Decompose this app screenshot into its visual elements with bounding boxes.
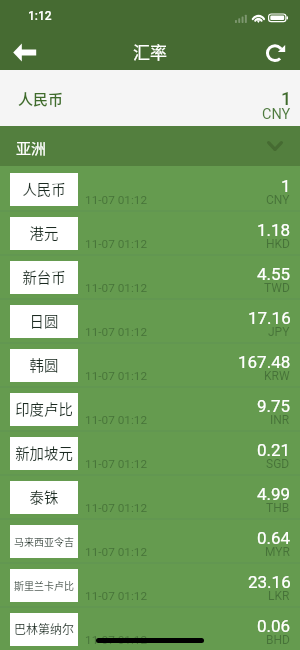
staticText: 11-07 01:12 <box>85 633 148 647</box>
button[interactable]: 斯里兰卡卢比 <box>0 569 300 613</box>
button[interactable]: Refresh <box>254 28 300 70</box>
staticText: 11-07 01:12 <box>85 589 148 603</box>
staticText: 4.55 <box>257 264 291 284</box>
staticText: HKD <box>266 237 290 251</box>
staticText: 11-07 01:12 <box>85 413 148 427</box>
staticText: 1 <box>281 176 291 196</box>
staticText: INR <box>270 413 290 427</box>
staticText: JPY <box>268 325 290 339</box>
staticText: CNY <box>262 106 291 123</box>
staticText: 港元 <box>10 222 78 243</box>
staticText: 167.48 <box>238 352 291 372</box>
staticText: CNY <box>266 193 290 207</box>
staticText: 4.99 <box>257 484 291 504</box>
button[interactable]: 巴林第纳尔 <box>0 613 300 650</box>
staticText: 巴林第纳尔 <box>10 620 78 637</box>
button[interactable]: 人民币 <box>0 173 300 217</box>
staticText: 11-07 01:12 <box>85 369 148 383</box>
staticText: 新加坡元 <box>10 442 78 463</box>
staticText: 斯里兰卡卢比 <box>10 578 78 592</box>
staticText: 1 <box>281 88 292 109</box>
staticText: 11-07 01:12 <box>85 545 148 559</box>
staticText: 人民币 <box>10 178 78 199</box>
button[interactable]: 亚洲 <box>0 126 300 166</box>
staticText: 1.18 <box>257 220 291 240</box>
staticText: 11-07 01:12 <box>85 193 148 207</box>
staticText: KRW <box>264 369 290 383</box>
button[interactable]: 泰铢 <box>0 481 300 525</box>
button[interactable]: 人民币 <box>0 70 300 126</box>
staticText: LKR <box>268 589 290 603</box>
staticText: 17.16 <box>248 308 291 328</box>
staticText: 11-07 01:12 <box>85 501 148 515</box>
staticText: 汇率 <box>133 39 167 64</box>
staticText: BHD <box>266 633 290 647</box>
button[interactable]: 港元 <box>0 217 300 261</box>
staticText: MYR <box>265 545 290 559</box>
button[interactable]: 马来西亚令吉 <box>0 525 300 569</box>
button[interactable]: Back <box>0 28 46 70</box>
staticText: 0.21 <box>257 440 291 460</box>
button[interactable]: 韩圆 <box>0 349 300 393</box>
staticText: 亚洲 <box>16 137 47 159</box>
staticText: 11-07 01:12 <box>85 237 148 251</box>
staticText: 0.06 <box>257 616 291 636</box>
staticText: 11-07 01:12 <box>85 457 148 471</box>
staticText: 11-07 01:12 <box>85 281 148 295</box>
staticText: 泰铢 <box>10 486 78 507</box>
staticText: 1:12 <box>28 9 52 23</box>
staticText: 9.75 <box>257 396 291 416</box>
staticText: SGD <box>266 457 290 471</box>
staticText: 人民币 <box>18 88 64 110</box>
button[interactable]: 新加坡元 <box>0 437 300 481</box>
button[interactable]: 印度卢比 <box>0 393 300 437</box>
staticText: THB <box>266 501 290 515</box>
staticText: 印度卢比 <box>10 398 78 419</box>
staticText: TWD <box>264 281 290 295</box>
staticText: 马来西亚令吉 <box>10 534 78 548</box>
button[interactable]: 新台币 <box>0 261 300 305</box>
button[interactable]: 日圆 <box>0 305 300 349</box>
staticText: 0.64 <box>257 528 291 548</box>
staticText: 韩圆 <box>10 354 78 375</box>
staticText: 日圆 <box>10 310 78 331</box>
staticText: 新台币 <box>10 266 78 287</box>
staticText: 23.16 <box>248 572 291 592</box>
staticText: 11-07 01:12 <box>85 325 148 339</box>
